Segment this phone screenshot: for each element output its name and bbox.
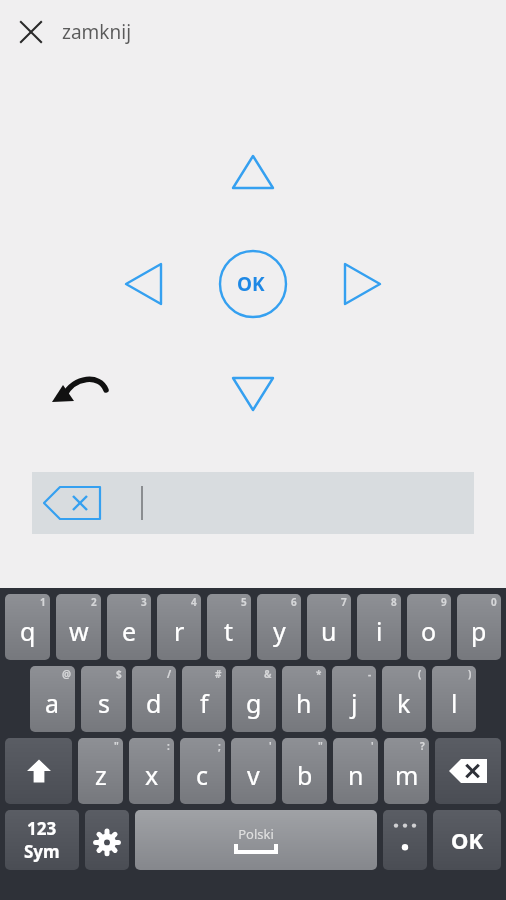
staticText: z <box>95 758 107 792</box>
button[interactable]: Zamknij <box>0 0 506 64</box>
staticText: - <box>368 667 372 681</box>
button[interactable]: Back <box>40 368 92 420</box>
staticText: $ <box>116 667 122 681</box>
button[interactable]: 7 <box>307 594 351 660</box>
button[interactable]: 3 <box>107 594 151 660</box>
button[interactable]: Kropka <box>383 810 427 870</box>
staticText: b <box>297 758 313 792</box>
staticText: OK <box>451 825 484 855</box>
staticText: @ <box>62 667 71 681</box>
staticText: " <box>114 739 119 753</box>
button[interactable]: ? <box>384 738 429 804</box>
staticText: g <box>246 686 262 720</box>
button[interactable]: ) <box>432 666 476 732</box>
staticText: q <box>20 614 36 648</box>
staticText: zamknij <box>62 19 132 45</box>
staticText: / <box>167 667 172 681</box>
staticText: k <box>397 686 411 720</box>
staticText: d <box>146 686 162 720</box>
button[interactable]: OK <box>220 253 282 315</box>
button[interactable]: Up <box>225 150 283 208</box>
staticText: o <box>421 614 437 648</box>
staticText: v <box>247 758 260 792</box>
staticText: l <box>451 686 458 720</box>
staticText: a <box>45 686 60 720</box>
button[interactable]: OK <box>433 810 501 870</box>
staticText: 4 <box>191 595 197 609</box>
button[interactable]: ' <box>231 738 276 804</box>
staticText: x <box>145 758 159 792</box>
button[interactable]: ( <box>382 666 426 732</box>
button[interactable]: Backspace <box>435 738 501 804</box>
staticText: ( <box>418 667 422 681</box>
button[interactable]: Settings <box>85 810 129 870</box>
button[interactable]: 4 <box>157 594 201 660</box>
staticText: m <box>395 758 419 792</box>
staticText: 5 <box>241 595 247 609</box>
button[interactable]: Right <box>340 256 398 314</box>
staticText: u <box>321 614 337 648</box>
staticText: w <box>69 614 89 648</box>
staticText: & <box>264 667 272 681</box>
button[interactable]: " <box>282 738 327 804</box>
staticText: 8 <box>391 595 397 609</box>
button[interactable]: # <box>182 666 226 732</box>
button[interactable]: 2 <box>56 594 101 660</box>
staticText: p <box>471 614 487 648</box>
button[interactable]: / <box>132 666 176 732</box>
button[interactable]: 6 <box>257 594 301 660</box>
button[interactable]: @ <box>30 666 75 732</box>
button[interactable]: " <box>78 738 123 804</box>
staticText: OK <box>237 271 265 297</box>
staticText: ' <box>371 739 374 753</box>
staticText: ? <box>420 739 425 753</box>
other: Zamknij <box>0 0 62 64</box>
staticText: 1 <box>40 595 46 609</box>
button[interactable]: Shift <box>5 738 72 804</box>
button[interactable]: 123 <box>5 810 79 870</box>
staticText: y <box>273 614 286 648</box>
button[interactable]: 8 <box>357 594 401 660</box>
staticText: i <box>376 614 383 648</box>
staticText: f <box>200 686 209 720</box>
staticText: 6 <box>291 595 297 609</box>
staticText: j <box>351 686 358 720</box>
button[interactable]: Left <box>105 256 163 314</box>
staticText: ; <box>218 739 221 753</box>
staticText: Sym <box>24 840 60 863</box>
staticText: 2 <box>91 595 97 609</box>
button[interactable]: 0 <box>457 594 501 660</box>
staticText: e <box>122 614 137 648</box>
staticText: n <box>348 758 364 792</box>
button[interactable]: * <box>282 666 326 732</box>
button[interactable]: : <box>129 738 174 804</box>
staticText: 3 <box>141 595 147 609</box>
button[interactable]: & <box>232 666 276 732</box>
button[interactable]: - <box>332 666 376 732</box>
button[interactable]: ' <box>333 738 378 804</box>
button[interactable]: Spacja Polski <box>135 810 377 870</box>
button[interactable]: 5 <box>207 594 251 660</box>
staticText: 0 <box>491 595 497 609</box>
button[interactable]: $ <box>81 666 126 732</box>
staticText: h <box>296 686 312 720</box>
button[interactable] <box>32 472 474 534</box>
button[interactable]: 1 <box>5 594 50 660</box>
staticText: * <box>316 667 322 681</box>
staticText: s <box>98 686 110 720</box>
staticText: 7 <box>341 595 347 609</box>
staticText: : <box>167 739 170 753</box>
staticText: # <box>215 667 222 681</box>
staticText: 9 <box>441 595 447 609</box>
staticText: t <box>224 614 234 648</box>
staticText: 123 <box>27 817 57 840</box>
staticText: c <box>196 758 209 792</box>
staticText: r <box>174 614 185 648</box>
button[interactable]: Down <box>225 372 273 420</box>
staticText: " <box>318 739 323 753</box>
staticText: ' <box>269 739 272 753</box>
button[interactable]: 9 <box>407 594 451 660</box>
button[interactable]: ; <box>180 738 225 804</box>
staticText: ) <box>468 667 472 681</box>
staticText: Polski <box>238 825 274 843</box>
